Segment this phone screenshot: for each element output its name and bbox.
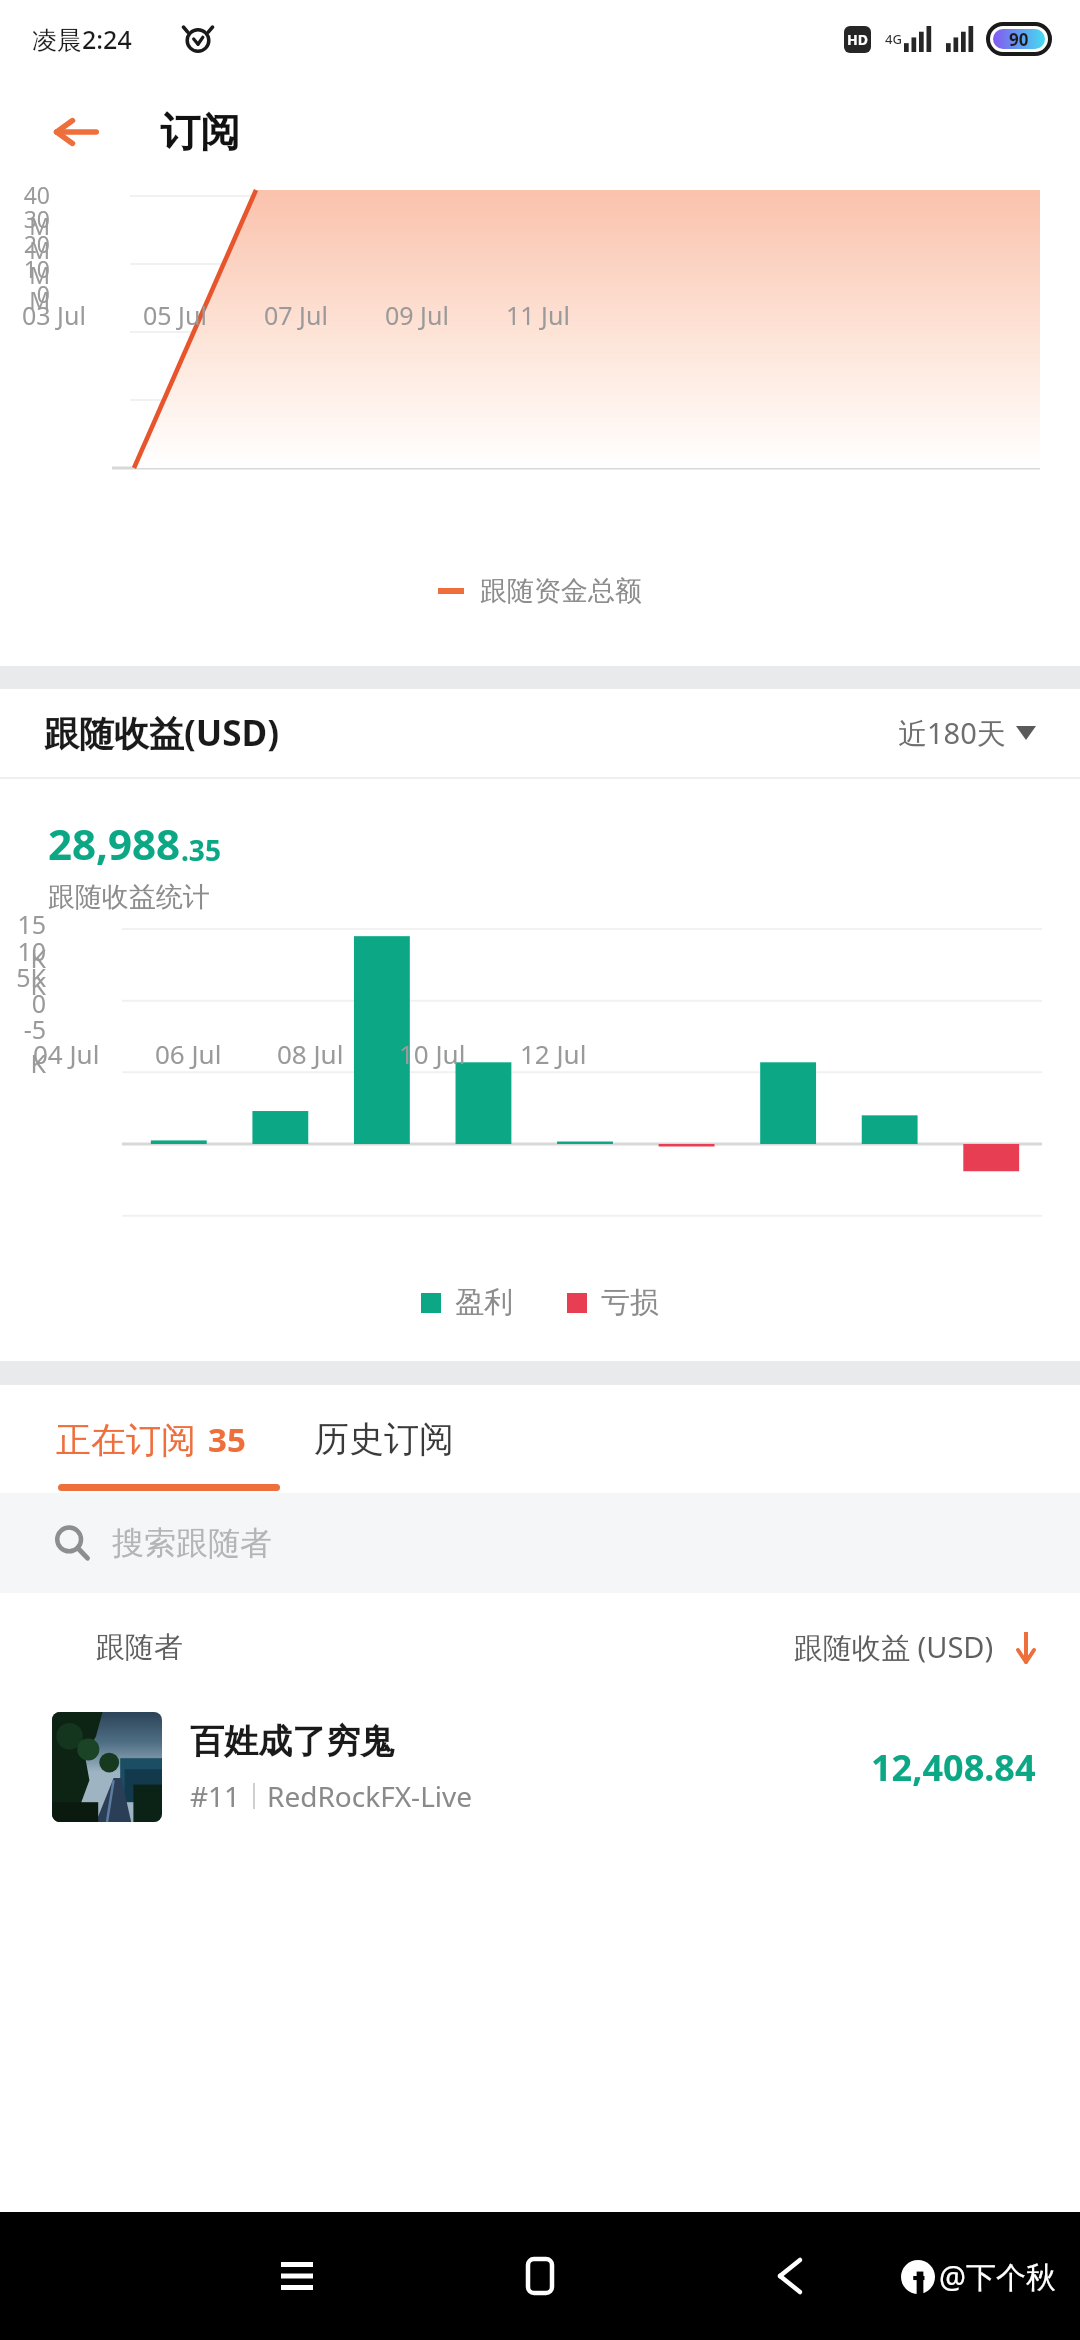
button[interactable]: Back [754, 2241, 824, 2311]
button[interactable]: 近180天 [898, 713, 1036, 753]
staticText: 0 [14, 986, 46, 1020]
staticText: 04 Jul [33, 1036, 100, 1071]
staticText: 06 Jul [155, 1036, 222, 1071]
staticText: 10M [14, 253, 50, 315]
button[interactable]: Recent apps [262, 2241, 332, 2311]
button[interactable]: 搜索跟随者 [0, 1493, 1080, 1593]
staticText: 跟随收益(USD) [44, 709, 280, 757]
button[interactable]: 百姓成了穷鬼 [0, 1701, 1080, 1833]
staticText: 08 Jul [277, 1036, 344, 1071]
button[interactable]: Home [505, 2241, 575, 2311]
button[interactable]: 跟随收益 (USD) [794, 1627, 1036, 1667]
staticText: 亏损 [601, 1284, 659, 1321]
staticText: 20M [14, 228, 50, 290]
staticText: 11 Jul [506, 298, 570, 332]
staticText: 40M [14, 179, 50, 241]
staticText: 07 Jul [264, 298, 328, 332]
staticText: 历史订阅 [314, 1417, 454, 1461]
staticText: 10K [14, 934, 46, 1002]
staticText: 凌晨2:24 [32, 22, 132, 56]
button[interactable]: Back [48, 104, 104, 160]
staticText: 03 Jul [22, 298, 86, 332]
staticText: 跟随者 [96, 1629, 183, 1666]
staticText: 15K [14, 907, 46, 975]
staticText: .35 [181, 831, 221, 869]
staticText: 05 Jul [143, 298, 207, 332]
staticText: 28,988 [48, 815, 181, 872]
staticText: 09 Jul [385, 298, 449, 332]
staticText: #11 [190, 1777, 241, 1815]
staticText: 订阅 [160, 107, 240, 157]
staticText: 跟随资金总额 [480, 574, 642, 608]
staticText: 4G [885, 30, 902, 48]
staticText: 跟随收益 (USD) [794, 1627, 994, 1667]
staticText: 搜索跟随者 [112, 1523, 272, 1563]
button[interactable]: 历史订阅 [286, 1385, 482, 1493]
staticText: 百姓成了穷鬼 [190, 1720, 394, 1763]
staticText: 35 [208, 1417, 246, 1462]
staticText: -5K [14, 1012, 46, 1080]
staticText: 0 [14, 278, 50, 309]
staticText: 5K [14, 960, 46, 994]
staticText: 正在订阅 [56, 1418, 196, 1462]
staticText: 近180天 [898, 713, 1006, 753]
button[interactable]: 正在订阅 [0, 1385, 286, 1493]
staticText: HD [847, 30, 868, 49]
staticText: @下个秋 [939, 2256, 1056, 2297]
staticText: 30M [14, 203, 50, 265]
staticText: 跟随收益统计 [48, 880, 210, 914]
staticText: 12 Jul [520, 1036, 587, 1071]
staticText: 盈利 [455, 1284, 513, 1321]
staticText: 12,408.84 [871, 1743, 1036, 1792]
staticText: RedRockFX-Live [267, 1777, 473, 1815]
staticText: 90 [1009, 28, 1029, 51]
staticText: 10 Jul [399, 1036, 466, 1071]
